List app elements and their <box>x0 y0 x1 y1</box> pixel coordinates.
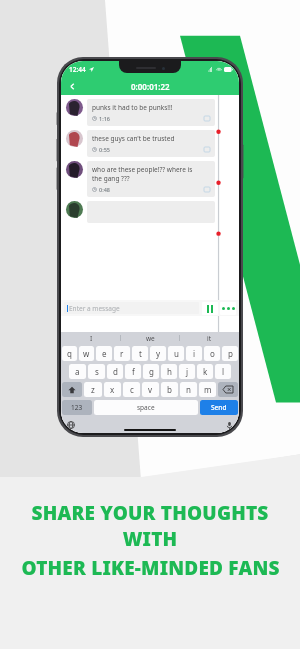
staticText: 0:48 <box>99 186 110 193</box>
button[interactable]: n <box>180 382 197 397</box>
staticText: t <box>139 348 142 359</box>
button[interactable]: Voice input <box>224 420 234 430</box>
staticText: v <box>148 384 153 395</box>
staticText: d <box>113 366 118 377</box>
staticText: q <box>67 348 72 359</box>
button[interactable]: these guys can't be trusted <box>66 130 215 157</box>
staticText: 12:44 <box>69 65 86 74</box>
button[interactable]: space <box>94 400 198 415</box>
staticText: SHARE YOUR THOUGHTS WITH <box>8 500 292 552</box>
staticText: g <box>149 366 154 377</box>
button[interactable]: Pause <box>202 302 218 315</box>
staticText: Enter a message <box>69 304 120 313</box>
staticText: i <box>193 348 196 359</box>
button[interactable]: Change keyboard <box>66 420 76 430</box>
staticText: n <box>186 384 191 395</box>
staticText: 0:00:01:22 <box>131 81 170 92</box>
button[interactable]: punks it had to be punks!!! <box>66 99 215 126</box>
button[interactable]: l <box>215 364 231 379</box>
staticText: space <box>137 403 155 412</box>
button[interactable]: f <box>125 364 141 379</box>
staticText: p <box>228 348 233 359</box>
button[interactable]: x <box>104 382 121 397</box>
staticText: 123 <box>71 403 83 412</box>
button[interactable]: o <box>204 346 220 361</box>
staticText: who are these people!?? where is the gan… <box>92 165 193 183</box>
staticText: o <box>210 348 215 359</box>
button[interactable]: q <box>62 346 77 361</box>
button[interactable]: I <box>61 332 121 344</box>
button[interactable]: m <box>199 382 216 397</box>
button[interactable]: i <box>186 346 202 361</box>
button[interactable]: h <box>161 364 177 379</box>
button[interactable]: Shift <box>62 382 82 397</box>
staticText: x <box>110 384 115 395</box>
button[interactable]: k <box>197 364 213 379</box>
staticText: k <box>203 366 208 377</box>
staticText: y <box>156 348 161 359</box>
staticText: c <box>130 384 134 395</box>
button[interactable]: t <box>132 346 148 361</box>
staticText: h <box>167 366 172 377</box>
staticText: these guys can't be trusted <box>92 134 175 143</box>
button[interactable]: Back <box>64 78 80 94</box>
staticText: r <box>120 348 124 359</box>
button[interactable]: it <box>180 332 239 344</box>
button[interactable]: s <box>88 364 105 379</box>
staticText: I <box>90 334 93 343</box>
button[interactable]: g <box>143 364 159 379</box>
button[interactable] <box>66 201 215 223</box>
button[interactable]: Backspace <box>218 382 238 397</box>
staticText: e <box>102 348 107 359</box>
staticText: f <box>132 366 135 377</box>
button[interactable]: Enter a message <box>64 302 199 314</box>
button[interactable]: y <box>150 346 166 361</box>
staticText: l <box>222 366 225 377</box>
button[interactable]: e <box>96 346 112 361</box>
staticText: u <box>174 348 179 359</box>
staticText: w <box>83 348 90 359</box>
staticText: z <box>91 384 95 395</box>
button[interactable]: we <box>121 332 180 344</box>
button[interactable]: p <box>222 346 238 361</box>
button[interactable]: w <box>79 346 94 361</box>
button[interactable]: j <box>179 364 195 379</box>
button[interactable]: r <box>114 346 130 361</box>
staticText: b <box>167 384 172 395</box>
staticText: we <box>146 334 155 343</box>
staticText: 1:16 <box>99 115 110 122</box>
staticText: a <box>75 366 80 377</box>
button[interactable]: c <box>123 382 140 397</box>
button[interactable]: b <box>161 382 178 397</box>
button[interactable]: More options <box>220 302 236 315</box>
button[interactable]: z <box>84 382 102 397</box>
staticText: 0:55 <box>99 146 110 153</box>
staticText: j <box>186 366 189 377</box>
staticText: OTHER LIKE-MINDED FANS <box>21 555 280 581</box>
button[interactable]: d <box>107 364 123 379</box>
staticText: it <box>207 334 212 343</box>
staticText: s <box>95 366 99 377</box>
staticText: Send <box>211 403 227 412</box>
button[interactable]: u <box>168 346 184 361</box>
button[interactable]: Send <box>200 400 238 415</box>
staticText: punks it had to be punks!!! <box>92 103 173 112</box>
button[interactable]: 123 <box>62 400 92 415</box>
button[interactable]: a <box>69 364 86 379</box>
button[interactable]: who are these people!?? where is the gan… <box>66 161 215 197</box>
staticText: m <box>204 384 212 395</box>
button[interactable]: v <box>142 382 159 397</box>
